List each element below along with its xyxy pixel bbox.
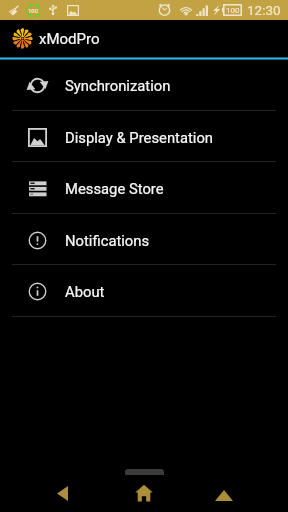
staticText: 12:30 [247, 2, 281, 18]
button[interactable]: Home [108, 460, 180, 512]
button[interactable]: Back [26, 460, 98, 512]
button[interactable]: About [0, 266, 288, 317]
staticText: 100 [28, 7, 39, 14]
staticText: Display & Presentation [65, 129, 213, 146]
button[interactable]: Recent apps [188, 460, 260, 512]
staticText: Synchronization [65, 77, 171, 94]
button[interactable]: Synchronization [0, 60, 288, 111]
staticText: About [65, 283, 105, 300]
staticText: 100 [226, 6, 240, 15]
button[interactable]: Notifications [0, 215, 288, 266]
staticText: Message Store [65, 180, 164, 197]
staticText: Notifications [65, 232, 150, 249]
button[interactable]: Message Store [0, 163, 288, 214]
staticText: xModPro [39, 30, 100, 48]
button[interactable]: Display & Presentation [0, 112, 288, 163]
